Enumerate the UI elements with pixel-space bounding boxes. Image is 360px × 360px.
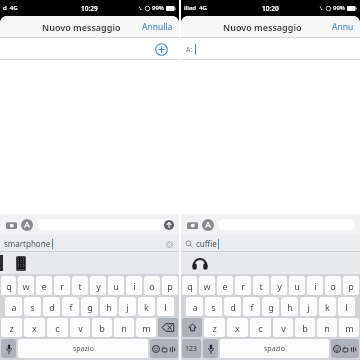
- staticText: i: [314, 280, 317, 292]
- button[interactable]: z: [1, 318, 22, 337]
- button[interactable]: u: [289, 276, 305, 295]
- staticText: Annulla: [142, 21, 173, 33]
- staticText: u: [294, 280, 300, 292]
- staticText: w: [203, 280, 211, 292]
- button[interactable]: s: [24, 297, 41, 316]
- staticText: f: [69, 301, 73, 313]
- button[interactable]: j: [119, 297, 136, 316]
- button[interactable]: b: [295, 318, 315, 337]
- button[interactable]: Backspace: [158, 318, 178, 337]
- button[interactable]: m: [339, 318, 359, 337]
- button[interactable]: Fotocamera: [185, 218, 199, 232]
- button[interactable]: j: [300, 297, 317, 316]
- staticText: a: [192, 301, 198, 313]
- button[interactable]: z: [204, 318, 225, 337]
- button[interactable]: i: [307, 276, 323, 295]
- button[interactable]: spazio: [220, 339, 329, 358]
- button[interactable]: h: [100, 297, 117, 316]
- button[interactable]: f: [243, 297, 260, 316]
- staticText: 123: [185, 344, 198, 354]
- button[interactable]: d: [43, 297, 60, 316]
- button[interactable]: Invia: [163, 219, 174, 230]
- button[interactable]: Cancella: [164, 239, 174, 249]
- button[interactable]: s: [205, 297, 222, 316]
- staticText: s: [30, 301, 35, 313]
- button[interactable]: c: [47, 318, 68, 337]
- button[interactable]: y: [90, 276, 106, 295]
- button[interactable]: a: [186, 297, 203, 316]
- staticText: h: [106, 301, 112, 313]
- staticText: q: [187, 280, 193, 292]
- button[interactable]: [218, 218, 356, 231]
- staticText: Annu: [332, 21, 354, 33]
- staticText: s: [211, 301, 216, 313]
- button[interactable]: Emoji e adesivi: [150, 339, 178, 358]
- button[interactable]: Aggiungi contatto: [153, 41, 169, 57]
- button[interactable]: x: [227, 318, 248, 337]
- button[interactable]: d: [224, 297, 241, 316]
- button[interactable]: i: [126, 276, 142, 295]
- button[interactable]: Emoji e adesivi: [331, 339, 359, 358]
- button[interactable]: p: [343, 276, 359, 295]
- staticText: x: [235, 322, 240, 334]
- button[interactable]: Maiuscole: [182, 318, 202, 337]
- button[interactable]: e: [36, 276, 52, 295]
- staticText: t: [259, 280, 263, 292]
- button[interactable]: Invia: [37, 218, 175, 231]
- button[interactable]: Annulla: [140, 19, 175, 35]
- staticText: y: [277, 280, 282, 292]
- button[interactable]: p: [162, 276, 178, 295]
- staticText: 99%: [152, 4, 164, 12]
- button[interactable]: a: [5, 297, 22, 316]
- button[interactable]: g: [262, 297, 279, 316]
- button[interactable]: o: [325, 276, 341, 295]
- button[interactable]: x: [24, 318, 45, 337]
- button[interactable]: w: [199, 276, 215, 295]
- staticText: h: [287, 301, 293, 313]
- button[interactable]: h: [281, 297, 298, 316]
- staticText: j: [126, 301, 129, 313]
- staticText: u: [113, 280, 119, 292]
- button[interactable]: l: [338, 297, 355, 316]
- button[interactable]: t: [72, 276, 88, 295]
- staticText: z: [9, 322, 14, 334]
- button[interactable]: r: [54, 276, 70, 295]
- button[interactable]: n: [114, 318, 134, 337]
- button[interactable]: m: [136, 318, 156, 337]
- button[interactable]: q: [1, 276, 16, 295]
- button[interactable]: u: [108, 276, 124, 295]
- button[interactable]: y: [271, 276, 287, 295]
- button[interactable]: Emoji cuffie: [191, 254, 209, 272]
- button[interactable]: Emoji smartphone: [12, 254, 30, 272]
- button[interactable]: q: [182, 276, 197, 295]
- button[interactable]: e: [217, 276, 233, 295]
- button[interactable]: r: [235, 276, 251, 295]
- staticText: l: [345, 301, 348, 313]
- button[interactable]: Fotocamera: [4, 218, 18, 232]
- staticText: w: [22, 280, 30, 292]
- button[interactable]: k: [138, 297, 155, 316]
- button[interactable]: App Store: [201, 218, 215, 232]
- button[interactable]: Dettatura: [203, 339, 218, 358]
- button[interactable]: App Store: [20, 218, 34, 232]
- button[interactable]: 123: [182, 339, 201, 358]
- button[interactable]: b: [92, 318, 112, 337]
- button[interactable]: v: [70, 318, 90, 337]
- button[interactable]: k: [319, 297, 336, 316]
- button[interactable]: t: [253, 276, 269, 295]
- staticText: c: [55, 322, 60, 334]
- button[interactable]: w: [18, 276, 34, 295]
- button[interactable]: n: [317, 318, 337, 337]
- button[interactable]: o: [144, 276, 160, 295]
- staticText: g: [268, 301, 274, 313]
- staticText: k: [144, 301, 149, 313]
- button[interactable]: Dettatura: [1, 339, 16, 358]
- button[interactable]: c: [250, 318, 271, 337]
- button[interactable]: g: [81, 297, 98, 316]
- button[interactable]: spazio: [18, 339, 148, 358]
- button[interactable]: f: [62, 297, 79, 316]
- staticText: e: [41, 280, 47, 292]
- button[interactable]: Annu: [330, 19, 356, 35]
- button[interactable]: v: [273, 318, 293, 337]
- button[interactable]: l: [157, 297, 174, 316]
